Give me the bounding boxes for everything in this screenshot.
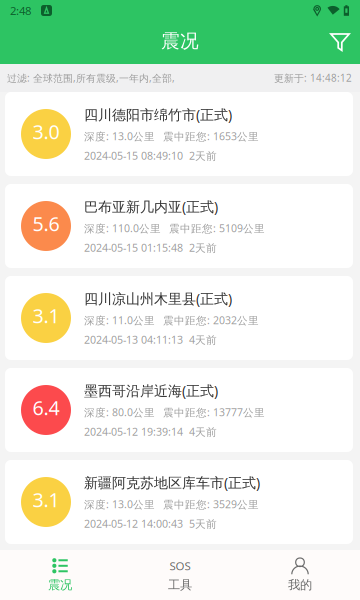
button[interactable]: 3.1 [5,276,353,360]
staticText: 震中距您: 13777公里 [163,405,265,419]
button[interactable]: 过滤: 全球范围,所有震级,一年内,全部, [0,64,360,92]
staticText: 3.0 [32,118,59,145]
staticText: 3.1 [32,302,59,329]
staticText: 深度: 13.0公里 [84,497,155,511]
button[interactable]: 筛选 [320,21,360,64]
staticText: 2024-05-12 14:00:43 [84,516,183,531]
button[interactable]: 我的 [240,550,360,599]
staticText: 4天前 [189,332,217,347]
button[interactable]: 5.6 [5,184,353,268]
staticText: 工具 [168,577,192,593]
staticText: 震况 [48,577,72,593]
staticText: SOS [169,558,190,574]
staticText: 墨西哥沿岸近海(正式) [84,381,218,400]
staticText: 深度: 110.0公里 [84,221,161,235]
staticText: 2024-05-13 04:11:13 [84,332,183,347]
staticText: 4天前 [189,424,217,439]
staticText: 震中距您: 2032公里 [163,313,259,327]
staticText: 5.6 [32,210,59,237]
staticText: 深度: 80.0公里 [84,405,155,419]
staticText: 2024-05-12 19:39:14 [84,424,183,439]
staticText: 2:48 [10,3,31,18]
staticText: 四川凉山州木里县(正式) [84,289,232,308]
button[interactable]: 震况 [0,550,120,599]
staticText: 过滤: 全球范围,所有震级,一年内,全部, [7,71,175,85]
staticText: 5天前 [189,516,217,531]
staticText: 3.1 [32,486,59,513]
staticText: 深度: 13.0公里 [84,129,155,143]
staticText: 震况 [161,29,199,53]
staticText: 6.4 [32,394,59,421]
staticText: 震中距您: 1653公里 [163,129,259,143]
staticText: 新疆阿克苏地区库车市(正式) [84,473,260,492]
staticText: 2天前 [189,148,217,163]
staticText: 2024-05-15 08:49:10 [84,148,183,163]
staticText: 巴布亚新几内亚(正式) [84,197,218,216]
staticText: 我的 [288,577,312,593]
button[interactable]: 3.0 [5,92,353,176]
button[interactable]: 6.4 [5,368,353,452]
staticText: 震中距您: 5109公里 [169,221,265,235]
button[interactable]: SOS [120,550,240,599]
staticText: 深度: 11.0公里 [84,313,155,327]
staticText: 震中距您: 3529公里 [163,497,259,511]
staticText: 2天前 [189,240,217,255]
staticText: 更新于: 14:48:12 [274,71,352,85]
staticText: 四川德阳市绵竹市(正式) [84,105,232,124]
button[interactable]: 3.1 [5,460,353,544]
staticText: 2024-05-15 01:15:48 [84,240,183,255]
